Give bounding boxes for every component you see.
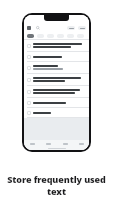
button[interactable]: Item icon [24, 98, 89, 108]
button[interactable] [78, 26, 86, 30]
button[interactable]: Search [36, 26, 40, 30]
button[interactable] [37, 34, 44, 38]
other: Item icon [27, 101, 31, 105]
button[interactable]: Item icon [24, 108, 89, 118]
other: Item icon [27, 90, 31, 94]
button[interactable] [57, 34, 64, 38]
button[interactable]: Item icon [24, 62, 89, 74]
other: Item icon [27, 66, 31, 70]
button[interactable]: Item icon [24, 74, 89, 86]
button[interactable] [67, 26, 75, 30]
button[interactable]: Item icon [24, 40, 89, 52]
button[interactable]: Item icon [24, 52, 89, 62]
button[interactable] [47, 34, 54, 38]
button[interactable]: Search [60, 140, 70, 147]
other: Item icon [27, 55, 31, 59]
button[interactable]: Lists [43, 140, 53, 147]
button[interactable] [67, 34, 74, 38]
button[interactable]: Profile [76, 140, 86, 147]
other: Item icon [27, 44, 31, 48]
button[interactable]: Menu [27, 26, 31, 30]
button[interactable]: Item icon [24, 86, 89, 98]
other: Item icon [27, 78, 31, 82]
staticText: Store frequently used text [4, 173, 109, 197]
button[interactable] [77, 34, 84, 38]
other: Item icon [27, 111, 31, 115]
button[interactable] [27, 34, 34, 38]
button[interactable]: Home [27, 140, 37, 147]
